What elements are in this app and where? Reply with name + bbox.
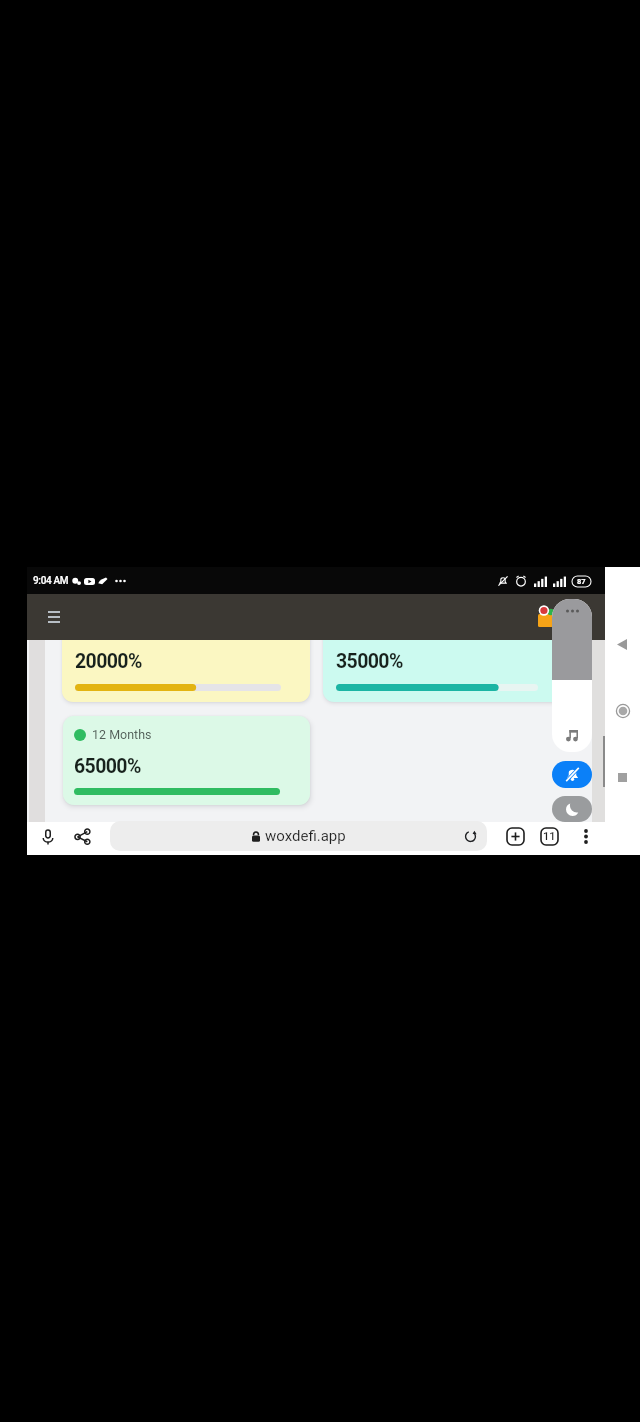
button[interactable]: woxdefi.app [110, 821, 487, 851]
staticText: 35000% [336, 650, 403, 673]
button[interactable]: Back [613, 635, 631, 653]
button[interactable]: 35000% [323, 640, 571, 702]
staticText: 9:04 AM [33, 575, 69, 587]
button[interactable]: Share [70, 824, 95, 849]
button[interactable]: Mute notifications [552, 761, 592, 788]
button[interactable]: Floating mini window [552, 599, 592, 752]
button[interactable]: More options [573, 824, 598, 849]
button[interactable]: Switch tabs, 11 open [537, 824, 562, 849]
staticText: 87 [577, 577, 586, 586]
staticText: 65000% [74, 755, 141, 778]
button[interactable]: 12 Months [63, 716, 310, 805]
button[interactable]: Reload page [459, 825, 481, 847]
button[interactable]: New tab [503, 824, 528, 849]
button[interactable]: Open navigation menu [41, 604, 67, 630]
staticText: 12 Months [92, 727, 152, 742]
staticText: 11 [543, 830, 556, 843]
button[interactable]: Voice search [35, 824, 60, 849]
staticText: 20000% [75, 650, 142, 673]
button[interactable]: 20000% [62, 640, 310, 702]
button[interactable]: Do not disturb [552, 796, 592, 822]
button[interactable]: Recent apps [613, 768, 632, 787]
staticText: woxdefi.app [265, 827, 346, 845]
button[interactable]: Home [613, 701, 633, 721]
